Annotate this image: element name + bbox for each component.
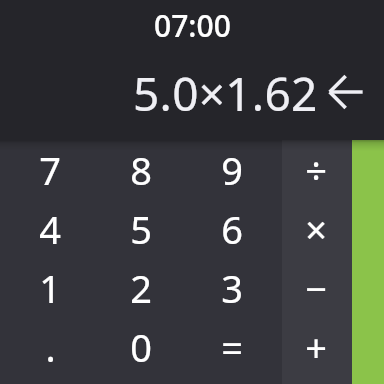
staticText: 0 — [130, 321, 152, 373]
staticText: + — [305, 321, 327, 373]
button[interactable]: 9 — [186, 141, 277, 199]
button[interactable]: 3 — [186, 258, 277, 317]
button[interactable]: Clear — [352, 140, 384, 384]
button[interactable]: 5 — [95, 199, 186, 258]
staticText: 3 — [221, 262, 243, 314]
staticText: − — [305, 262, 327, 314]
staticText: 1 — [39, 262, 61, 314]
staticText: ÷ — [305, 144, 327, 196]
button[interactable]: = — [186, 317, 277, 376]
staticText: 5 — [130, 203, 152, 255]
staticText: 9 — [221, 144, 243, 196]
button[interactable]: Add — [282, 317, 349, 376]
staticText: × — [305, 203, 327, 255]
staticText: 8 — [130, 144, 152, 196]
button[interactable]: Backspace — [329, 75, 363, 109]
staticText: 4 — [39, 203, 61, 255]
button[interactable]: 6 — [186, 199, 277, 258]
button[interactable]: 8 — [95, 141, 186, 199]
button[interactable]: 2 — [95, 258, 186, 317]
button[interactable]: Subtract — [282, 258, 349, 317]
staticText: 07:00 — [154, 5, 231, 46]
staticText: 6 — [221, 203, 243, 255]
button[interactable]: Multiply — [282, 199, 349, 258]
button[interactable]: 4 — [5, 199, 95, 258]
button[interactable]: 7 — [5, 141, 95, 199]
staticText: . — [45, 321, 56, 373]
staticText: 2 — [130, 262, 152, 314]
staticText: = — [221, 321, 243, 373]
button[interactable]: 1 — [5, 258, 95, 317]
staticText: 7 — [39, 144, 61, 196]
button[interactable]: 0 — [95, 317, 186, 376]
button[interactable]: Divide — [282, 141, 349, 199]
button[interactable]: . — [5, 317, 95, 376]
staticText: 5.0×1.62 — [133, 62, 318, 125]
